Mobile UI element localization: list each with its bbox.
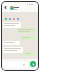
button[interactable] [3, 41, 20, 45]
button[interactable] [3, 61, 29, 68]
button[interactable] [17, 28, 36, 33]
button[interactable]: Back [3, 5, 7, 9]
button[interactable]: Send [30, 61, 36, 67]
button[interactable]: Contact photo [10, 6, 14, 10]
button[interactable] [24, 52, 36, 56]
button[interactable] [21, 36, 36, 40]
button[interactable] [3, 47, 23, 53]
button[interactable] [3, 22, 21, 28]
